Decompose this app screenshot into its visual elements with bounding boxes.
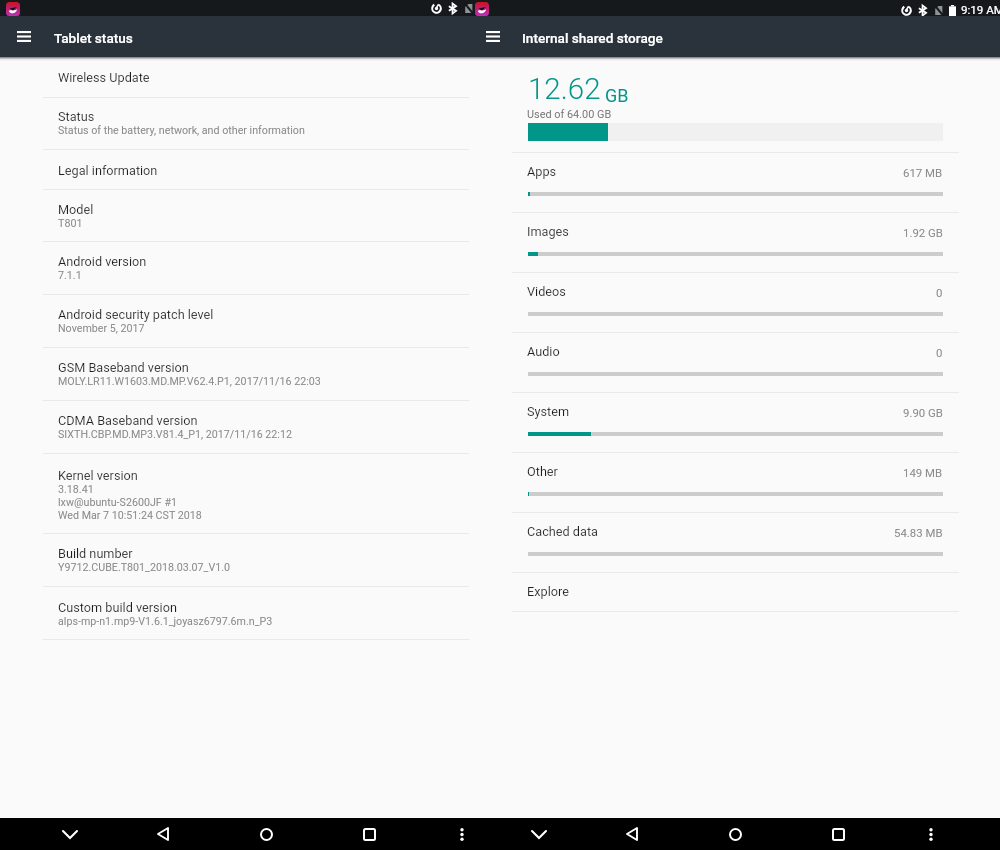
button[interactable]: More options	[917, 823, 945, 845]
button[interactable]: Status	[0, 97, 1000, 148]
button[interactable]: More options	[448, 823, 476, 845]
staticText: 1.92 GB	[903, 226, 943, 239]
button[interactable]: Model	[0, 190, 1000, 241]
button[interactable]: Apps	[0, 152, 1000, 212]
button[interactable]: Recents	[824, 823, 852, 845]
staticText: System	[527, 404, 570, 419]
button[interactable]: Wireless Update	[0, 58, 1000, 96]
staticText: Wireless Update	[58, 70, 150, 85]
staticText: Custom build version	[58, 600, 177, 615]
button[interactable]: Images	[0, 212, 1000, 272]
button[interactable]: CDMA Baseband version	[0, 401, 1000, 453]
staticText: 0	[936, 286, 943, 299]
staticText: Images	[527, 224, 569, 239]
staticText: GB	[605, 85, 629, 106]
staticText: lxw@ubuntu-S2600JF #1	[58, 496, 177, 509]
staticText: T801	[58, 217, 83, 230]
button[interactable]: Kernel version	[0, 456, 1000, 533]
staticText: Tablet status	[54, 30, 133, 46]
button[interactable]: Menu	[479, 22, 507, 50]
staticText: Internal shared storage	[522, 30, 663, 46]
staticText: Legal information	[58, 163, 158, 178]
staticText: Used of 64.00 GB	[527, 108, 612, 121]
button[interactable]: Recents	[355, 823, 383, 845]
staticText: Android security patch level	[58, 307, 214, 322]
button[interactable]: Audio	[0, 332, 1000, 392]
staticText: Kernel version	[58, 468, 138, 483]
staticText: 9:19 AM	[961, 3, 1000, 17]
button[interactable]: Build number	[0, 534, 1000, 585]
staticText: Status	[58, 109, 95, 124]
staticText: 7.1.1	[58, 269, 82, 282]
staticText: 3.18.41	[58, 483, 94, 496]
staticText: Cached data	[527, 524, 598, 539]
staticText: 9.90 GB	[903, 406, 943, 419]
staticText: Audio	[527, 344, 560, 359]
staticText: November 5, 2017	[58, 322, 145, 335]
button[interactable]: Hide keyboard	[525, 823, 553, 845]
staticText: Videos	[527, 284, 566, 299]
staticText: Build number	[58, 546, 133, 561]
staticText: alps-mp-n1.mp9-V1.6.1_joyasz6797.6m.n_P3	[58, 615, 273, 628]
button[interactable]: Android version	[0, 242, 1000, 294]
staticText: Explore	[527, 584, 569, 599]
staticText: Model	[58, 202, 94, 217]
button[interactable]: Custom build version	[0, 588, 1000, 639]
button[interactable]: Home	[252, 823, 280, 845]
staticText: Android version	[58, 254, 147, 269]
staticText: CDMA Baseband version	[58, 413, 198, 428]
button[interactable]: Menu	[10, 22, 38, 50]
staticText: Apps	[527, 164, 557, 179]
button[interactable]: Hide keyboard	[56, 823, 84, 845]
staticText: 12.62	[528, 72, 601, 107]
staticText: 54.83 MB	[894, 526, 943, 539]
button[interactable]: Videos	[0, 272, 1000, 332]
button[interactable]: Cached data	[0, 512, 1000, 572]
button[interactable]: Back	[149, 823, 177, 845]
staticText: Y9712.CUBE.T801_2018.03.07_V1.0	[58, 561, 231, 574]
button[interactable]: Legal information	[0, 150, 1000, 190]
button[interactable]: Explore	[0, 572, 1000, 611]
button[interactable]: System	[0, 392, 1000, 452]
staticText: GSM Baseband version	[58, 360, 189, 375]
button[interactable]: Back	[618, 823, 646, 845]
staticText: 617 MB	[903, 166, 943, 179]
button[interactable]: Android security patch level	[0, 295, 1000, 347]
staticText: 149 MB	[903, 466, 943, 479]
staticText: SIXTH.CBP.MD.MP3.V81.4_P1, 2017/11/16 22…	[58, 428, 292, 441]
button[interactable]: Other	[0, 452, 1000, 512]
button[interactable]: GSM Baseband version	[0, 348, 1000, 400]
button[interactable]: Home	[721, 823, 749, 845]
staticText: Status of the battery, network, and othe…	[58, 124, 305, 137]
staticText: Wed Mar 7 10:51:24 CST 2018	[58, 509, 202, 522]
staticText: Other	[527, 464, 558, 479]
staticText: 0	[936, 346, 943, 359]
staticText: MOLY.LR11.W1603.MD.MP.V62.4.P1, 2017/11/…	[58, 375, 321, 388]
